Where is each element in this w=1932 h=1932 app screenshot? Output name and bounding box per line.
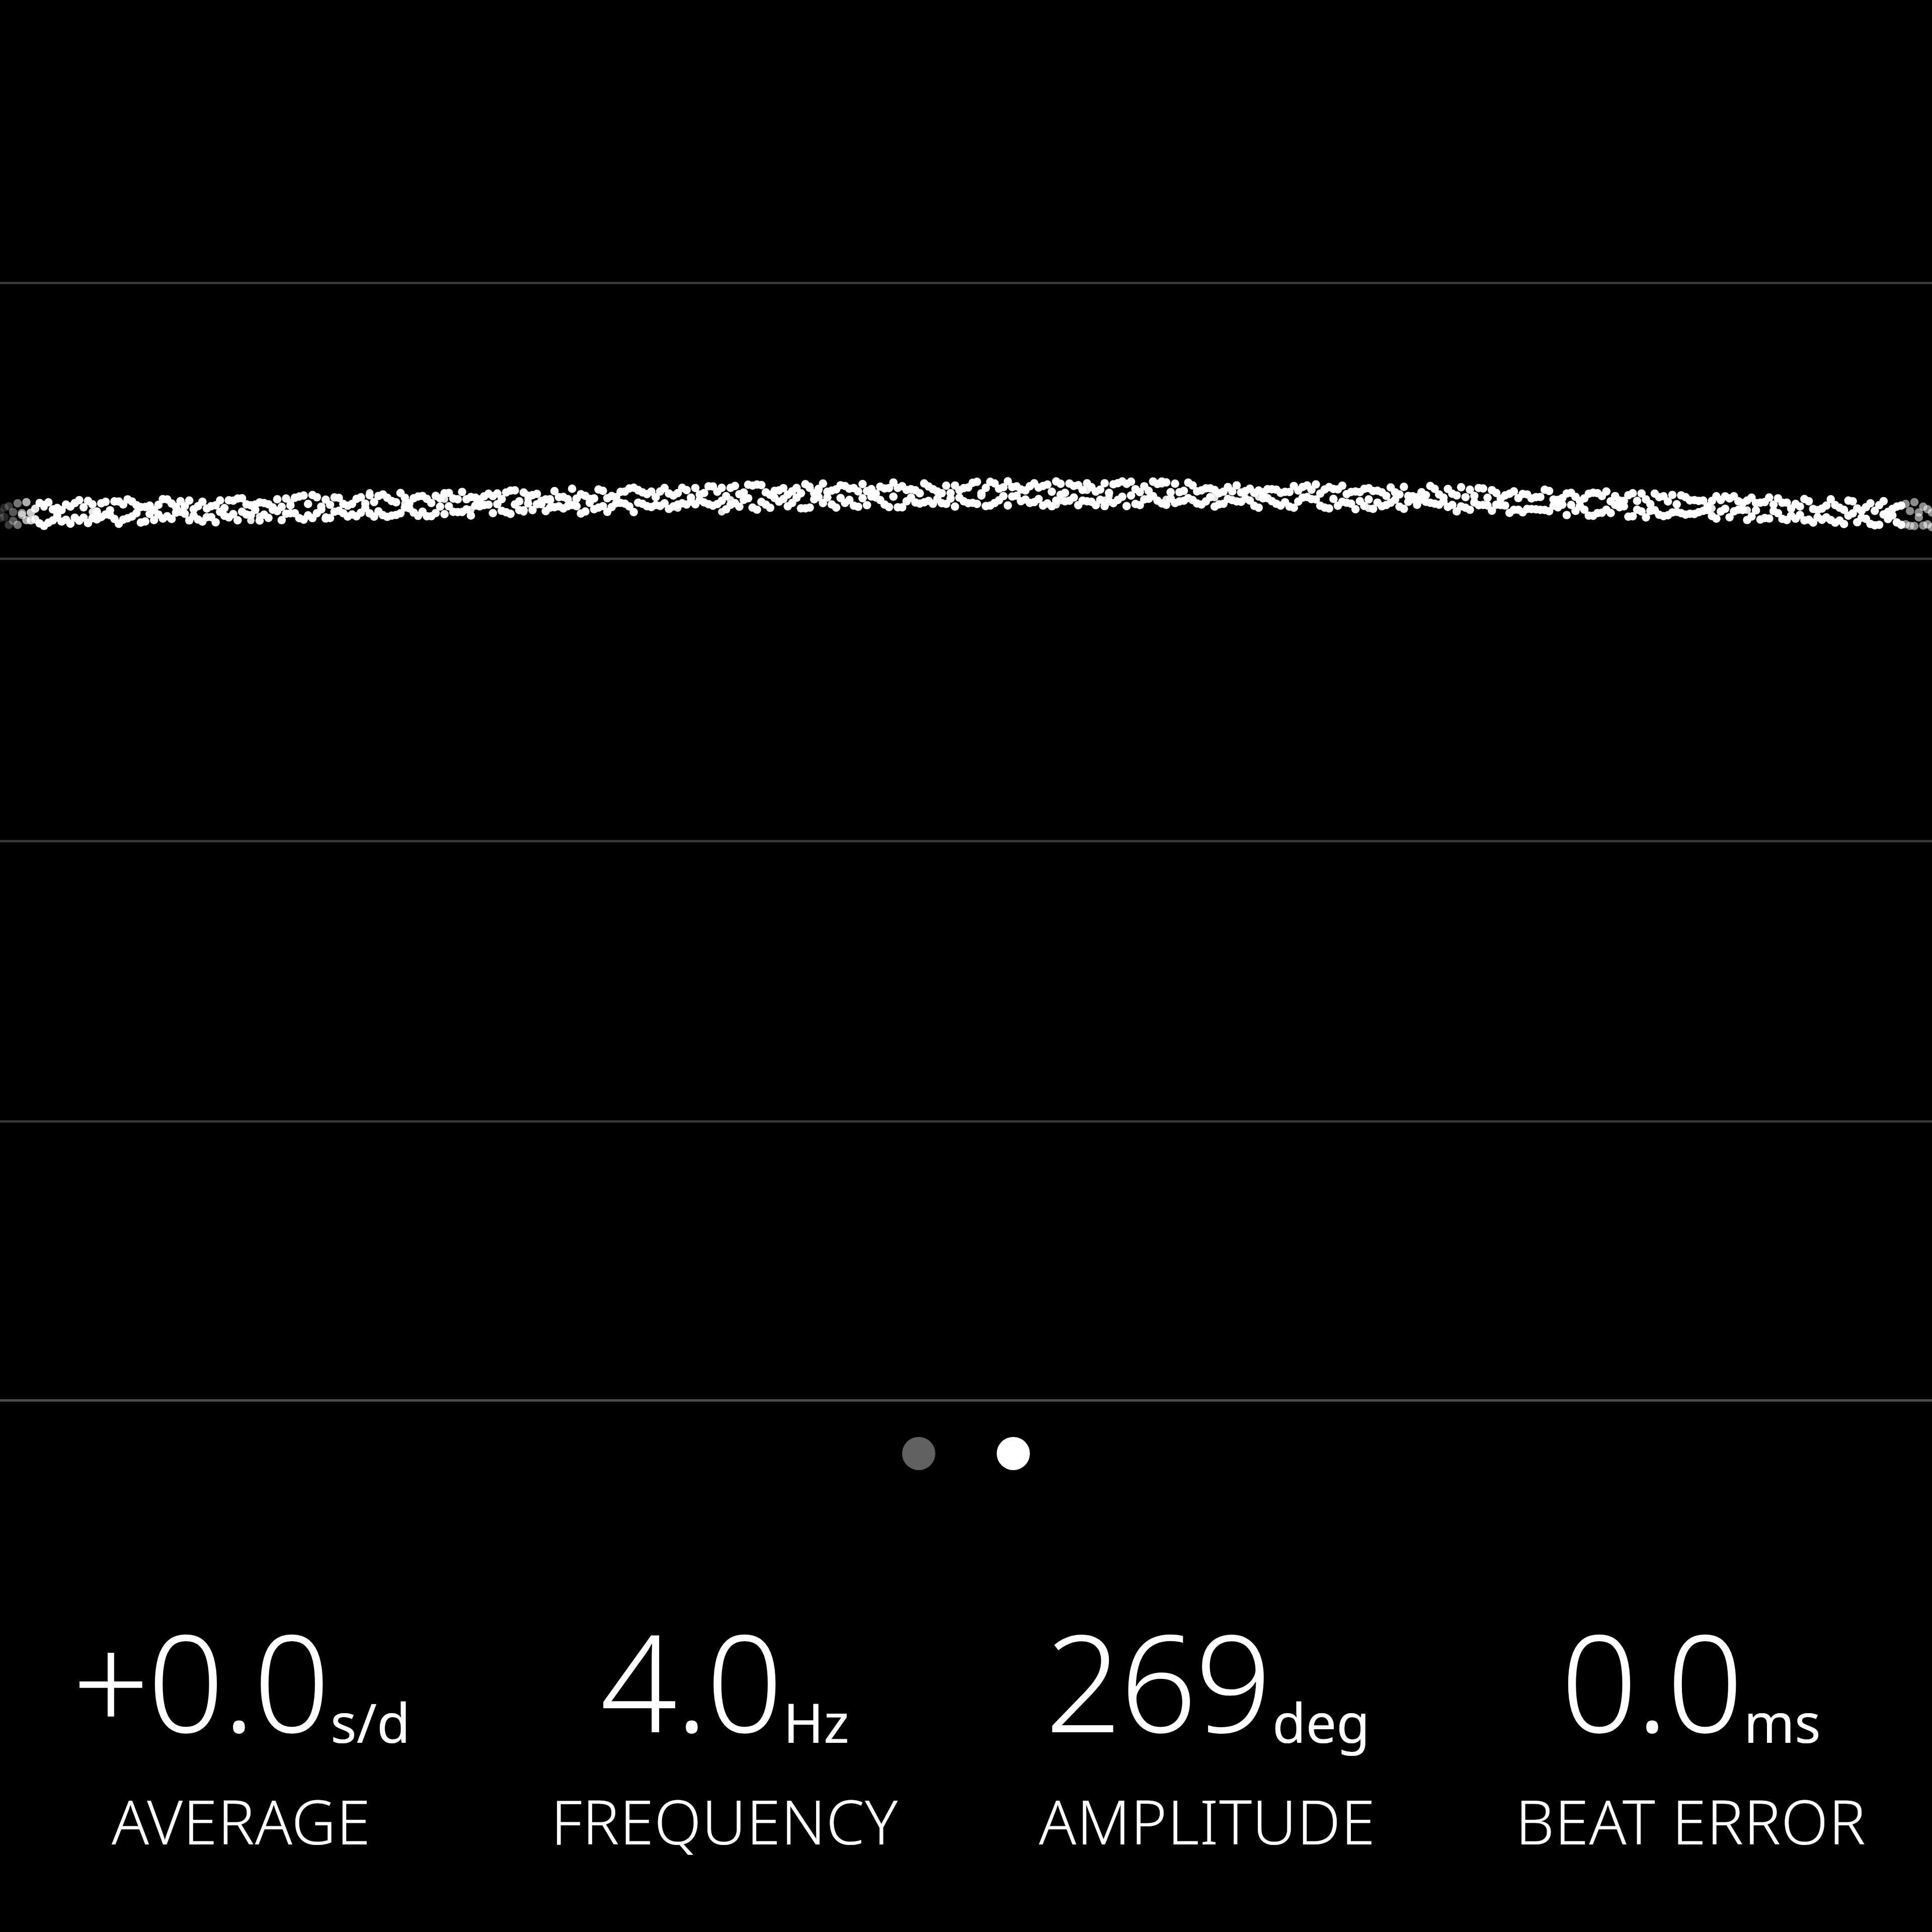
staticText: +0.0 [72, 1588, 329, 1772]
button[interactable]: 269 [966, 1565, 1449, 1932]
staticText: 4.0 [600, 1588, 781, 1772]
staticText: 0.0 [1561, 1588, 1742, 1772]
button[interactable]: +0.0 [0, 1565, 483, 1932]
staticText: AVERAGE [112, 1779, 371, 1863]
button[interactable]: Page 2, selected [997, 1437, 1030, 1470]
staticText: AMPLITUDE [1039, 1779, 1376, 1863]
staticText: BEAT ERROR [1515, 1779, 1866, 1863]
staticText: 269 [1045, 1588, 1270, 1772]
staticText: deg [1272, 1685, 1370, 1759]
button[interactable] [0, 0, 1932, 1399]
staticText: FREQUENCY [551, 1779, 899, 1863]
button[interactable]: Page 1 [902, 1437, 935, 1470]
button[interactable]: 4.0 [483, 1565, 966, 1932]
button[interactable]: 0.0 [1449, 1565, 1932, 1932]
staticText: s/d [331, 1685, 411, 1759]
staticText: ms [1744, 1685, 1821, 1759]
staticText: Hz [783, 1685, 849, 1759]
